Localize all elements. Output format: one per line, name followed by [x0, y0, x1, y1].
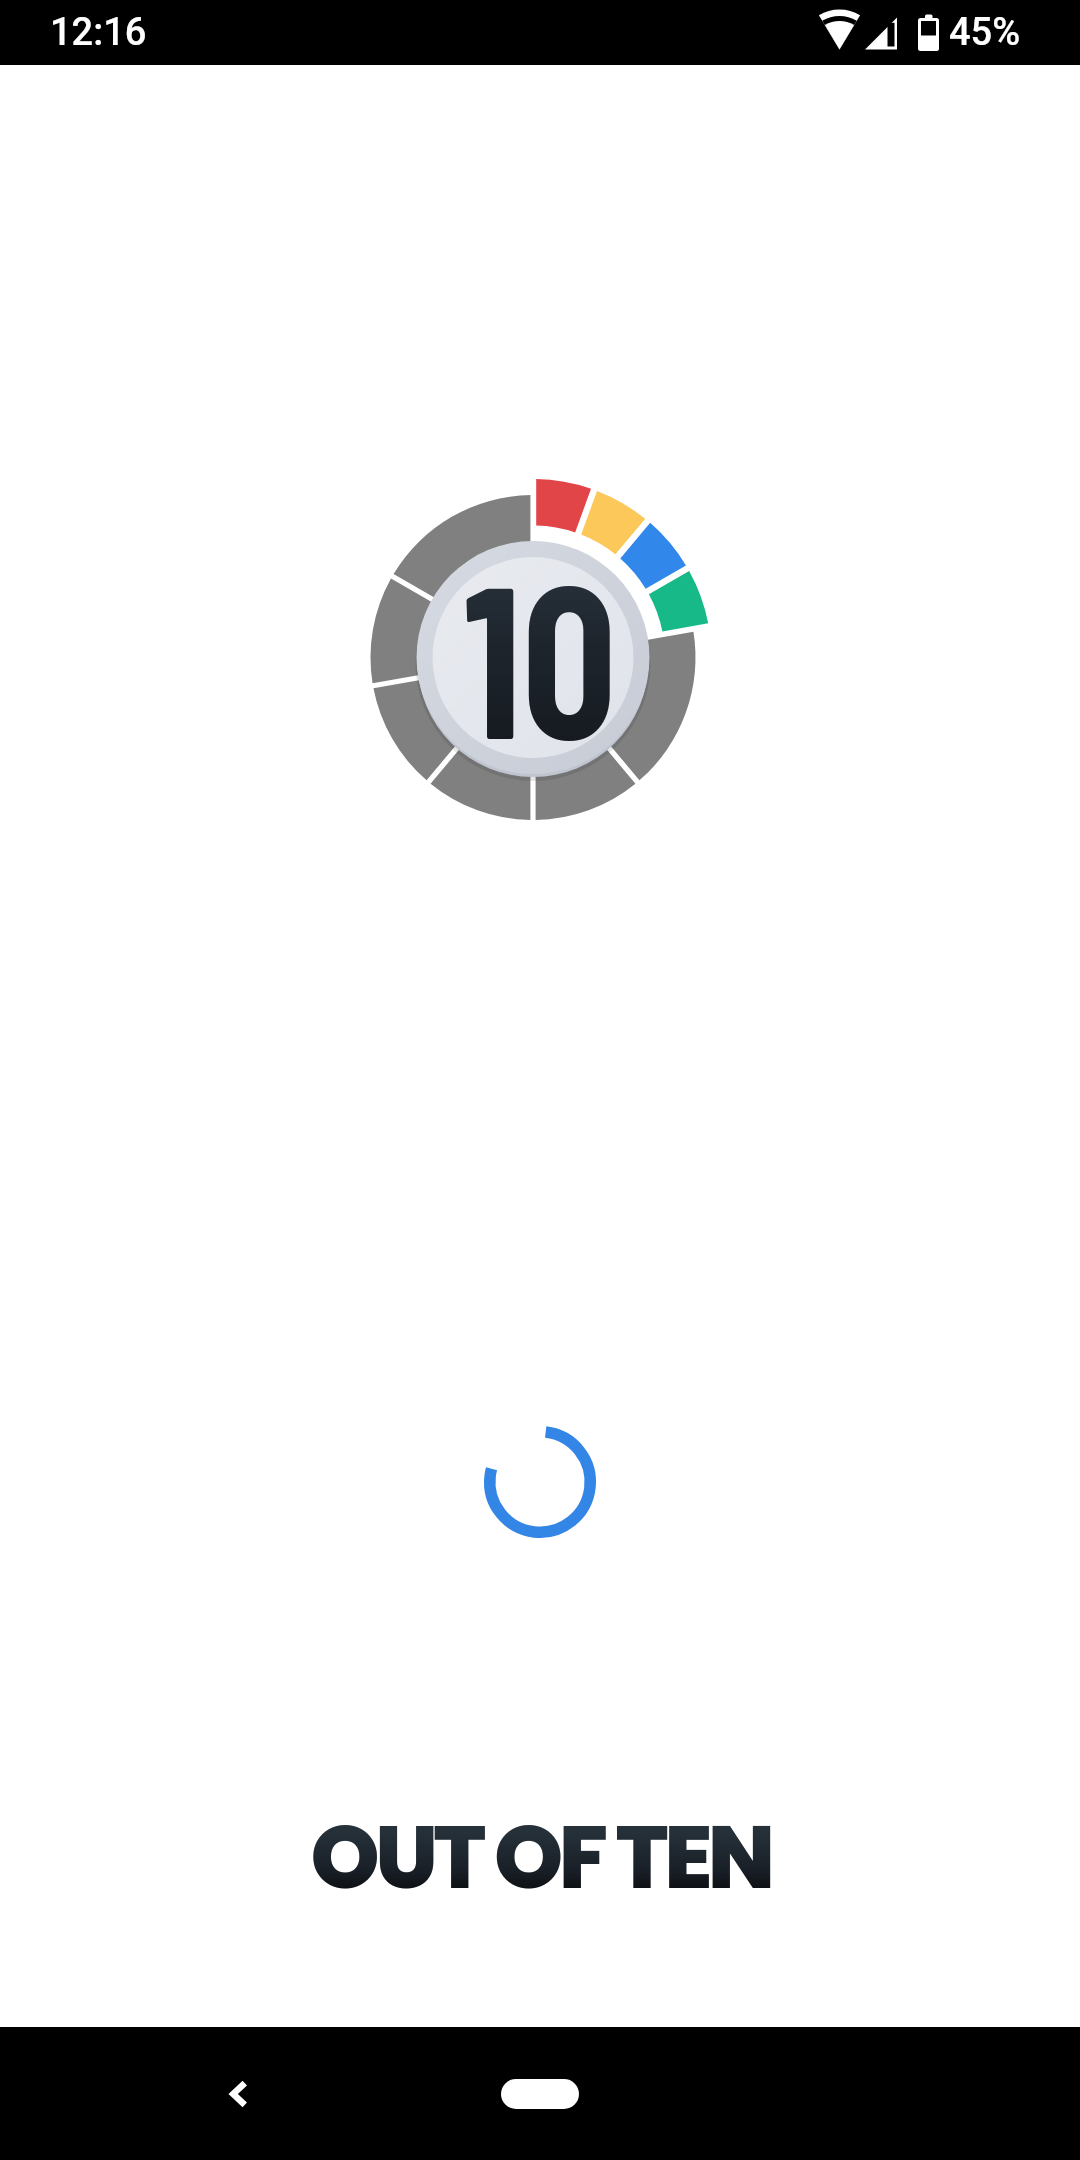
- other: Loading: [484, 1426, 596, 1538]
- staticText: OUT OF TEN: [310, 1796, 771, 1919]
- button[interactable]: Home: [501, 2079, 579, 2109]
- staticText: 10: [462, 524, 617, 782]
- staticText: 45%: [949, 10, 1021, 55]
- staticText: 12:16: [50, 10, 147, 55]
- button[interactable]: Back: [189, 2044, 289, 2144]
